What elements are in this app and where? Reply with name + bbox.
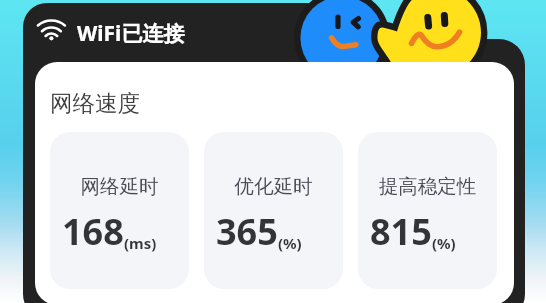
staticText: 365: [216, 207, 278, 256]
staticText: 815: [370, 207, 432, 256]
staticText: 优化延时: [204, 174, 343, 199]
other: WiFi connected: [38, 19, 66, 42]
staticText: (ms): [124, 233, 157, 253]
button[interactable]: 优化延时: [204, 132, 343, 289]
button[interactable]: WiFi connected: [23, 3, 298, 60]
staticText: (%): [432, 233, 456, 253]
staticText: 提高稳定性: [358, 174, 497, 199]
staticText: (%): [278, 233, 302, 253]
button[interactable]: 提高稳定性: [358, 132, 497, 289]
staticText: 网络速度: [50, 89, 140, 117]
button[interactable]: 网络延时: [50, 132, 189, 289]
staticText: WiFi已连接: [77, 19, 185, 48]
staticText: 168: [62, 207, 124, 256]
staticText: 网络延时: [50, 174, 189, 199]
